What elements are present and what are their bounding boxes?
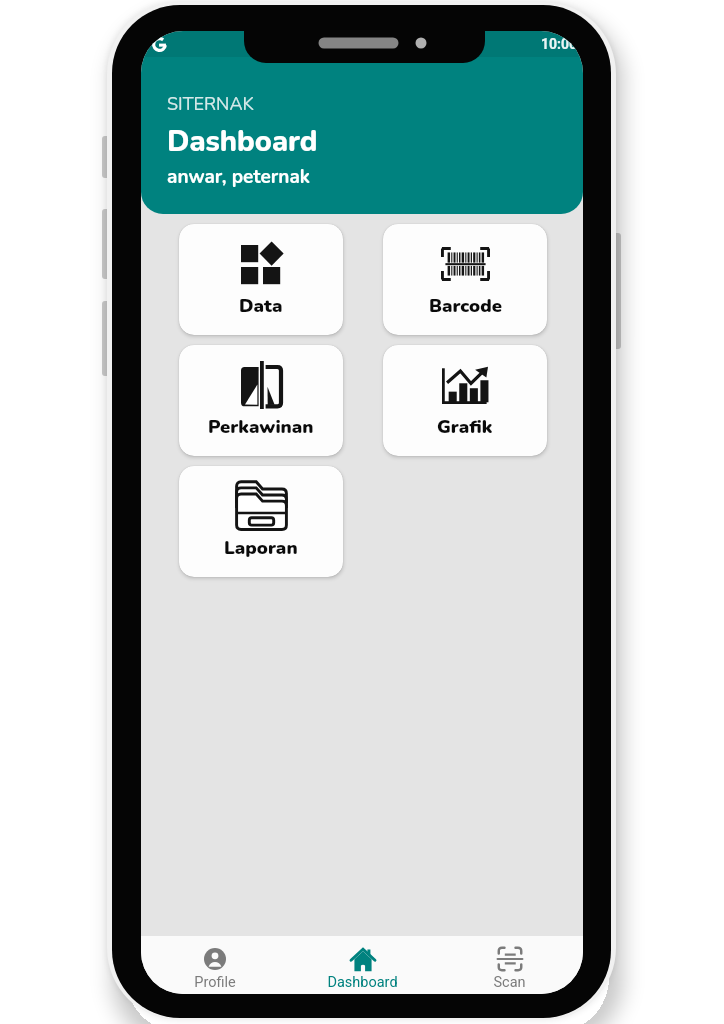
staticText: anwar, peternak	[167, 164, 310, 190]
staticText: Barcode	[429, 293, 502, 318]
button[interactable]: Laporan	[179, 466, 343, 577]
staticText: Scan	[493, 974, 526, 991]
staticText: Grafik	[437, 414, 493, 439]
button[interactable]: Perkawinan	[179, 345, 343, 456]
staticText: Laporan	[224, 535, 298, 560]
staticText: Perkawinan	[208, 414, 314, 439]
staticText: Dashboard	[167, 122, 318, 162]
button[interactable]: Grafik	[383, 345, 547, 456]
staticText: Profile	[194, 974, 236, 991]
staticText: Data	[239, 293, 283, 318]
button[interactable]: Scan	[436, 936, 583, 994]
staticText: 10:00	[541, 36, 578, 52]
button[interactable]: Barcode	[383, 224, 547, 335]
button[interactable]: Profile	[141, 936, 289, 994]
staticText: Dashboard	[327, 974, 398, 991]
button[interactable]: Data	[179, 224, 343, 335]
button[interactable]: Dashboard	[289, 936, 436, 994]
staticText: SITERNAK	[167, 92, 254, 117]
